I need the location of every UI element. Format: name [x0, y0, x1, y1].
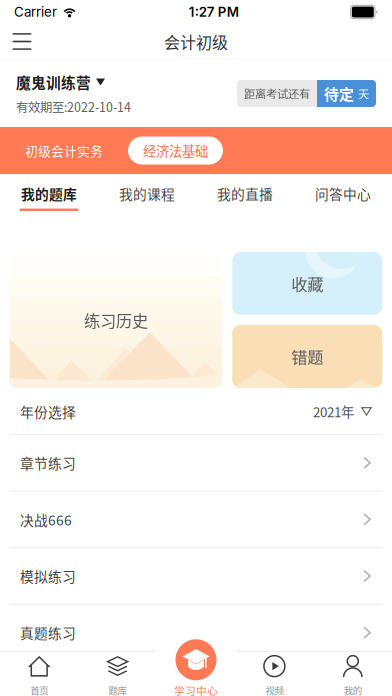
button[interactable]: Menu	[0, 24, 44, 59]
staticText: 错题	[291, 345, 323, 368]
staticText: 问答中心	[315, 184, 371, 203]
staticText: 我的题库	[21, 184, 77, 203]
button[interactable]: 决战666	[0, 492, 392, 548]
button[interactable]: 我的课程	[98, 174, 196, 222]
staticText: 有效期至:2022-10-14	[16, 98, 131, 116]
staticText: Carrier	[14, 4, 57, 20]
staticText: 真题练习	[20, 623, 76, 643]
staticText: 初级会计实务	[25, 141, 103, 160]
staticText: 我的	[344, 683, 362, 696]
button[interactable]: 我的	[314, 651, 392, 696]
staticText: 首页	[30, 683, 48, 696]
staticText: 模拟练习	[20, 566, 76, 586]
staticText: 距离考试还有	[244, 85, 310, 102]
staticText: 决战666	[20, 509, 72, 529]
staticText: 待定	[324, 83, 354, 104]
button[interactable]: 视频	[235, 651, 314, 696]
button[interactable]: 首页	[0, 651, 78, 696]
staticText: 我的直播	[217, 184, 273, 203]
button[interactable]: 我的题库	[0, 174, 98, 222]
button[interactable]: 题库	[78, 651, 157, 696]
staticText: 魔鬼训练营	[16, 71, 91, 93]
button[interactable]: 错题	[232, 325, 382, 388]
button[interactable]: 收藏	[232, 252, 382, 315]
button[interactable]: 练习历史	[10, 252, 222, 388]
button[interactable]: 魔鬼训练营	[16, 71, 105, 93]
staticText: 练习历史	[84, 308, 148, 332]
staticText: 收藏	[291, 272, 323, 295]
staticText: 我的课程	[119, 184, 175, 203]
button[interactable]: 真题练习	[0, 605, 392, 661]
button[interactable]: 经济法基础	[128, 136, 223, 164]
button[interactable]: 模拟练习	[0, 548, 392, 605]
button[interactable]: 问答中心	[294, 174, 392, 222]
staticText: 题库	[109, 683, 127, 696]
staticText: 2021年	[313, 402, 354, 421]
staticText: 会计初级	[164, 30, 228, 53]
staticText: 学习中心	[174, 682, 218, 696]
button[interactable]: 我的直播	[196, 174, 294, 222]
staticText: 1:27 PM	[189, 4, 239, 20]
button[interactable]: 学习中心	[157, 651, 235, 696]
staticText: 天	[358, 85, 369, 102]
button[interactable]: 章节练习	[0, 435, 392, 492]
staticText: 视频	[265, 683, 283, 696]
button[interactable]: 初级会计实务	[12, 136, 116, 164]
staticText: 章节练习	[20, 453, 76, 473]
staticText: 经济法基础	[143, 141, 208, 160]
staticText: 年份选择	[20, 402, 76, 421]
button[interactable]: 年份选择	[0, 389, 392, 435]
